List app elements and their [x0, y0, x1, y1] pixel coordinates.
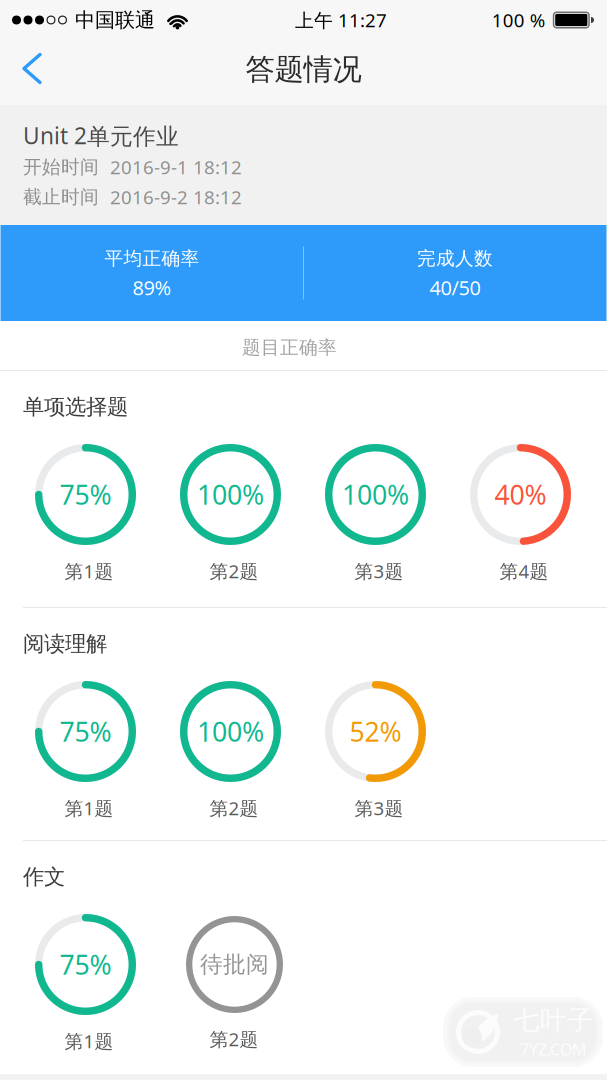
staticText: 100%: [197, 714, 264, 749]
staticText: 第2题: [209, 1027, 258, 1051]
staticText: 75%: [59, 714, 111, 749]
staticText: 40/50: [429, 274, 480, 301]
staticText: 100%: [197, 477, 264, 512]
staticText: 第1题: [64, 1029, 113, 1053]
staticText: 75%: [59, 477, 111, 512]
button[interactable]: 52%: [303, 681, 448, 818]
button[interactable]: 40%: [448, 444, 593, 581]
staticText: 七叶子: [513, 1004, 594, 1037]
staticText: 7YZ.COM: [520, 1039, 587, 1060]
button[interactable]: 100%: [303, 444, 448, 581]
staticText: 75%: [59, 947, 111, 982]
staticText: 第3题: [354, 559, 403, 583]
button[interactable]: 75%: [13, 681, 158, 818]
staticText: 上午 11:27: [295, 8, 387, 32]
staticText: 2016-9-2 18:12: [110, 185, 242, 209]
staticText: 第3题: [354, 796, 403, 820]
staticText: 52%: [349, 714, 401, 749]
staticText: 平均正确率: [104, 247, 199, 270]
staticText: 完成人数: [417, 247, 493, 270]
button[interactable]: 75%: [13, 444, 158, 581]
button[interactable]: 100%: [158, 444, 303, 581]
staticText: 单项选择题: [23, 394, 128, 420]
staticText: 答题情况: [245, 51, 361, 87]
staticText: 题目正确率: [242, 336, 337, 359]
staticText: 89%: [132, 274, 171, 301]
staticText: 作文: [23, 864, 65, 890]
staticText: 中国联通: [75, 8, 155, 32]
staticText: 截止时间: [23, 185, 99, 208]
staticText: 阅读理解: [23, 631, 107, 657]
staticText: 第2题: [209, 559, 258, 583]
staticText: 开始时间: [23, 155, 99, 178]
staticText: 100%: [342, 477, 409, 512]
staticText: 2016-9-1 18:12: [110, 155, 242, 179]
button[interactable]: 返回: [10, 50, 56, 94]
staticText: 第2题: [209, 796, 258, 820]
staticText: 待批阅: [200, 951, 269, 978]
staticText: 第1题: [64, 796, 113, 820]
staticText: 第4题: [499, 559, 548, 583]
staticText: 40%: [494, 477, 546, 512]
staticText: Unit 2单元作业: [23, 120, 179, 151]
button[interactable]: 待批阅: [158, 916, 303, 1049]
staticText: 第1题: [64, 559, 113, 583]
staticText: 100 %: [492, 8, 546, 32]
button[interactable]: 100%: [158, 681, 303, 818]
button[interactable]: 75%: [13, 914, 158, 1051]
